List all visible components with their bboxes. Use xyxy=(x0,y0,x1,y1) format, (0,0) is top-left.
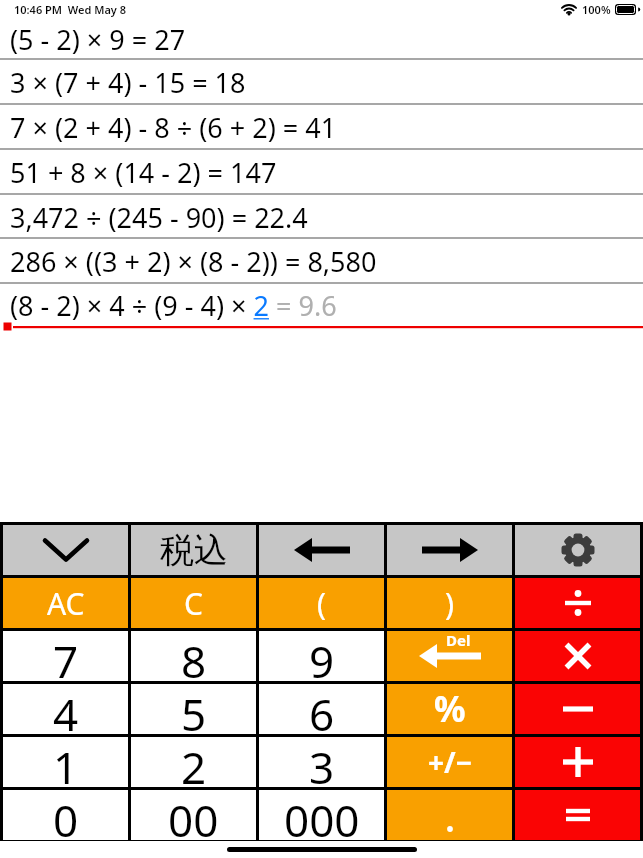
staticText: AC xyxy=(47,583,85,624)
staticText: 51 + 8 × (14 - 2) = 147 xyxy=(10,154,277,191)
button[interactable]: 51 + 8 × (14 - 2) = 147 xyxy=(0,150,643,195)
button[interactable]: 1 xyxy=(3,737,128,787)
button[interactable]: 3 × (7 + 4) - 15 = 18 xyxy=(0,60,643,105)
button[interactable] xyxy=(515,684,640,734)
button[interactable]: 0 xyxy=(3,790,128,840)
staticText: ) xyxy=(445,583,454,624)
staticText: 2 xyxy=(181,737,207,787)
staticText: (8 - 2) × 4 ÷ (9 - 4) × 2 = 9.6 xyxy=(10,287,337,324)
staticText: 5 xyxy=(181,684,207,734)
staticText: 286 × ((3 + 2) × (8 - 2)) = 8,580 xyxy=(10,243,377,280)
staticText: 4 xyxy=(53,684,79,734)
button[interactable]: 000 xyxy=(259,790,384,840)
button[interactable] xyxy=(387,525,512,575)
button[interactable]: 00 xyxy=(131,790,256,840)
staticText: 00 xyxy=(168,790,219,840)
staticText: 8 xyxy=(181,631,207,681)
staticText: 1 xyxy=(53,737,79,787)
staticText: +/− xyxy=(428,743,472,781)
button[interactable] xyxy=(387,790,512,840)
staticText: 3 × (7 + 4) - 15 = 18 xyxy=(10,64,246,101)
staticText: 100% xyxy=(582,2,611,17)
button[interactable]: ) xyxy=(387,578,512,628)
button[interactable] xyxy=(259,525,384,575)
button[interactable]: Del xyxy=(387,631,512,681)
button[interactable] xyxy=(515,790,640,840)
button[interactable]: C xyxy=(131,578,256,628)
button[interactable]: 税込 xyxy=(131,525,256,575)
staticText: 3 xyxy=(309,737,335,787)
staticText: Del xyxy=(446,630,471,650)
staticText: 000 xyxy=(284,790,360,840)
staticText: ( xyxy=(317,583,326,624)
staticText: 7 xyxy=(53,631,79,681)
staticText: 9 xyxy=(309,631,335,681)
button[interactable]: 6 xyxy=(259,684,384,734)
button[interactable]: 5 xyxy=(131,684,256,734)
button[interactable]: +/− xyxy=(387,737,512,787)
staticText: C xyxy=(184,583,203,624)
button[interactable]: 7 xyxy=(3,631,128,681)
button[interactable]: 286 × ((3 + 2) × (8 - 2)) = 8,580 xyxy=(0,239,643,284)
button[interactable] xyxy=(515,525,640,575)
button[interactable]: AC xyxy=(3,578,128,628)
button[interactable]: 3,472 ÷ (245 - 90) = 22.4 xyxy=(0,195,643,239)
staticText: 7 × (2 + 4) - 8 ÷ (6 + 2) = 41 xyxy=(10,109,337,146)
button[interactable]: 4 xyxy=(3,684,128,734)
button[interactable] xyxy=(515,631,640,681)
button[interactable] xyxy=(515,578,640,628)
staticText: (5 - 2) × 9 = 27 xyxy=(10,21,186,58)
staticText: 10:46 PM Wed May 8 xyxy=(14,2,127,17)
button[interactable]: % xyxy=(387,684,512,734)
button[interactable]: (8 - 2) × 4 ÷ (9 - 4) × 2 = 9.6 xyxy=(0,284,643,326)
button[interactable]: 2 xyxy=(131,737,256,787)
button[interactable]: 7 × (2 + 4) - 8 ÷ (6 + 2) = 41 xyxy=(0,105,643,150)
button[interactable]: 8 xyxy=(131,631,256,681)
staticText: 3,472 ÷ (245 - 90) = 22.4 xyxy=(10,199,308,236)
button[interactable] xyxy=(3,525,128,575)
button[interactable]: ( xyxy=(259,578,384,628)
staticText: % xyxy=(434,685,466,733)
staticText: 0 xyxy=(53,790,79,840)
button[interactable] xyxy=(515,737,640,787)
staticText: 税込 xyxy=(160,529,228,572)
button[interactable]: (5 - 2) × 9 = 27 xyxy=(0,18,643,60)
staticText: 6 xyxy=(309,684,335,734)
button[interactable]: 3 xyxy=(259,737,384,787)
button[interactable]: 9 xyxy=(259,631,384,681)
